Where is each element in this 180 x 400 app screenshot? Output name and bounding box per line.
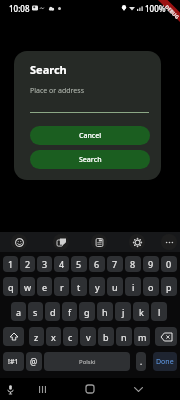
button[interactable]: g	[79, 302, 95, 321]
button[interactable]: k	[133, 302, 149, 321]
staticText: n	[121, 331, 127, 343]
button[interactable]: Keyboard tool	[161, 234, 177, 250]
staticText: v	[86, 331, 91, 343]
button[interactable]: o	[143, 277, 159, 296]
button[interactable]: 7	[107, 256, 123, 272]
button[interactable]: 9	[143, 256, 159, 272]
staticText: 1	[8, 258, 14, 270]
staticText: 6	[94, 258, 100, 270]
staticText: @	[30, 356, 38, 367]
staticText: Place or address	[30, 86, 84, 96]
button[interactable]: p	[161, 277, 177, 296]
button[interactable]: Keyboard tool	[53, 234, 69, 250]
staticText: a	[16, 306, 22, 318]
button[interactable]: 3	[37, 256, 52, 272]
staticText: 8	[130, 258, 136, 270]
button[interactable]: Voice input	[2, 378, 18, 400]
staticText: 0	[166, 258, 172, 270]
button[interactable]: f	[62, 302, 77, 321]
staticText: p	[166, 281, 172, 293]
staticText: u	[112, 281, 118, 293]
button[interactable]: Keyboard tool	[11, 234, 27, 250]
button[interactable]: s	[28, 302, 43, 321]
staticText: z	[34, 331, 39, 343]
button[interactable]: 0	[161, 256, 177, 272]
staticText: q	[8, 281, 14, 293]
staticText: e	[42, 281, 48, 293]
button[interactable]: y	[89, 277, 105, 296]
button[interactable]: Cancel	[30, 126, 150, 145]
button[interactable]: Keyboard tool	[91, 234, 107, 250]
button[interactable]: .	[136, 352, 146, 371]
staticText: h	[102, 306, 108, 318]
staticText: r	[60, 281, 64, 293]
button[interactable]: 6	[89, 256, 105, 272]
button[interactable]: v	[80, 327, 96, 346]
button[interactable]: i	[125, 277, 141, 296]
button[interactable]: a	[11, 302, 26, 321]
staticText: Search	[30, 62, 67, 77]
button[interactable]: c	[63, 327, 78, 346]
staticText: Done	[156, 357, 174, 367]
staticText: 4	[59, 258, 65, 270]
button[interactable]: u	[107, 277, 123, 296]
button[interactable]: 4	[54, 256, 69, 272]
staticText: b	[103, 331, 109, 343]
staticText: Cancel	[79, 131, 102, 141]
button[interactable]: Keyboard tool	[129, 234, 145, 250]
button[interactable]: q	[3, 277, 18, 296]
button[interactable]: Hide keyboard	[123, 378, 153, 400]
staticText: 2	[25, 258, 31, 270]
staticText: 3	[42, 258, 48, 270]
button[interactable]: w	[20, 277, 35, 296]
button[interactable]: Done	[153, 352, 177, 371]
button[interactable]: r	[54, 277, 69, 296]
button[interactable]: @	[26, 352, 42, 371]
button[interactable]: l	[151, 302, 167, 321]
staticText: f	[68, 306, 72, 318]
button[interactable]: 8	[125, 256, 141, 272]
staticText: t	[77, 281, 81, 293]
staticText: 100%	[145, 3, 166, 14]
button[interactable]: Home	[75, 378, 105, 400]
staticText: m	[138, 331, 147, 343]
staticText: i	[132, 281, 135, 293]
button[interactable]: x	[46, 327, 61, 346]
staticText: 10:08	[9, 3, 30, 14]
button[interactable]: Backspace	[155, 327, 177, 346]
staticText: x	[51, 331, 56, 343]
button[interactable]: b	[98, 327, 114, 346]
button[interactable]: Search	[30, 150, 150, 169]
staticText: g	[84, 306, 90, 318]
staticText: Search	[79, 155, 102, 165]
staticText: DEBUG	[163, 4, 180, 21]
button[interactable]: !#1	[3, 352, 24, 371]
staticText: 9	[148, 258, 154, 270]
staticText: o	[148, 281, 154, 293]
button[interactable]: 5	[71, 256, 87, 272]
button[interactable]: Polski	[44, 352, 130, 371]
staticText: w	[24, 281, 32, 293]
button[interactable]: m	[134, 327, 150, 346]
staticText: 7	[112, 258, 118, 270]
button[interactable]: n	[116, 327, 132, 346]
staticText: 5	[76, 258, 82, 270]
button[interactable]: 1	[3, 256, 18, 272]
button[interactable]: h	[97, 302, 113, 321]
staticText: d	[50, 306, 56, 318]
staticText: y	[95, 281, 100, 293]
button[interactable]: z	[29, 327, 44, 346]
staticText: k	[139, 306, 144, 318]
button[interactable]: d	[45, 302, 60, 321]
button[interactable]: j	[115, 302, 131, 321]
button[interactable]: 2	[20, 256, 35, 272]
staticText: !#1	[8, 357, 19, 367]
button[interactable]: e	[37, 277, 52, 296]
staticText: l	[158, 306, 161, 318]
button[interactable]: Recent apps	[27, 378, 57, 400]
button[interactable]: t	[71, 277, 87, 296]
button[interactable]: Shift	[3, 327, 24, 346]
staticText: s	[33, 306, 38, 318]
staticText: .	[140, 356, 143, 367]
staticText: c	[68, 331, 73, 343]
